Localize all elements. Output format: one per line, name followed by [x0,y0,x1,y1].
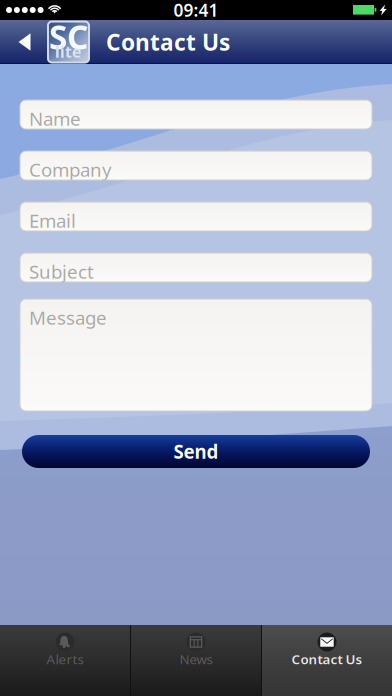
button[interactable]: Email [20,202,372,231]
staticText: Send [173,439,218,464]
staticText: Email [29,208,76,233]
staticText: Subject [29,259,94,284]
button[interactable]: Back [0,20,48,64]
staticText: SC [49,14,88,59]
staticText: 09:41 [173,0,218,21]
staticText: News [179,650,212,668]
staticText: Contact Us [106,27,230,57]
button[interactable]: News [131,625,261,696]
button[interactable]: Name [20,100,372,129]
staticText: Contact Us [291,650,362,668]
button[interactable]: Alerts [0,625,130,696]
button[interactable]: Send [0,411,392,468]
staticText: Name [29,106,81,131]
button[interactable]: Company [20,151,372,180]
staticText: Message [29,305,107,330]
staticText: Alerts [46,650,83,668]
staticText: lite [55,41,82,62]
staticText: Company [29,157,112,182]
button[interactable]: Contact Us [262,625,392,696]
button[interactable]: Subject [20,253,372,282]
button[interactable]: Message [20,299,372,411]
